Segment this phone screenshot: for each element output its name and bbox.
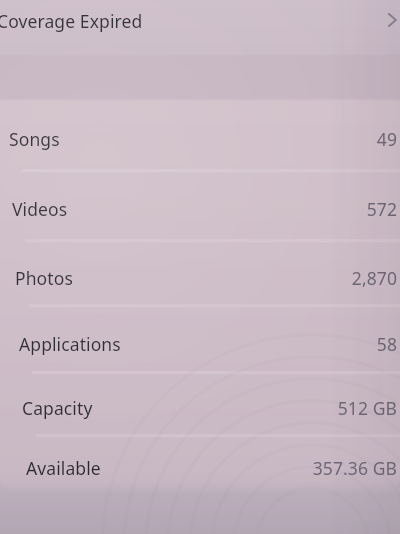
staticText: Coverage Expired — [0, 9, 143, 33]
staticText: Available — [26, 456, 101, 480]
staticText: 512 GB — [337, 396, 397, 420]
button[interactable]: Photos — [0, 240, 400, 305]
button[interactable]: Songs — [0, 104, 400, 170]
staticText: 357.36 GB — [312, 456, 397, 480]
staticText: 58 — [376, 332, 397, 356]
button[interactable]: Available — [0, 435, 400, 493]
staticText: Applications — [19, 332, 121, 356]
staticText: 572 — [366, 197, 397, 221]
staticText: Capacity — [22, 396, 93, 420]
other: Coverage Expired details — [388, 12, 398, 28]
staticText: 49 — [376, 127, 397, 151]
button[interactable]: Applications — [0, 305, 400, 372]
staticText: 2,870 — [351, 266, 397, 290]
button[interactable]: Videos — [0, 170, 400, 240]
button[interactable]: Coverage Expired — [0, 0, 400, 54]
staticText: Songs — [9, 127, 60, 151]
staticText: Photos — [15, 266, 73, 290]
button[interactable]: Capacity — [0, 372, 400, 435]
staticText: Videos — [12, 197, 68, 221]
